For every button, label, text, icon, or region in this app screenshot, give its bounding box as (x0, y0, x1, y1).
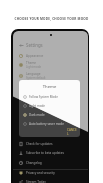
staticText: Stream Today (26, 180, 46, 183)
button[interactable]: Navigate up (18, 41, 62, 49)
button[interactable]: Follow System Mode (19, 93, 80, 101)
staticText: CHOOSE YOUR MODE, CHOOSE YOUR MOOD (0, 17, 103, 21)
staticText: Theme (26, 61, 37, 65)
staticText: Theme (19, 84, 80, 90)
staticText: Subscribe to beta updates (26, 151, 64, 155)
button[interactable]: Dark mode (19, 111, 80, 119)
staticText: Check for updates (26, 142, 53, 146)
staticText: Auto battery saver mode (29, 122, 64, 126)
staticText: System default (26, 76, 46, 80)
button[interactable]: Subscribe to beta updates (13, 148, 88, 157)
button[interactable]: Privacy and security (13, 168, 88, 177)
button[interactable]: CANCEL (67, 128, 77, 135)
button[interactable]: Changelog (13, 158, 88, 167)
staticText: Language (26, 72, 41, 76)
button[interactable]: Privacy and security (13, 168, 88, 177)
staticText: Theme (26, 61, 37, 65)
staticText: Follow System Mode (29, 95, 58, 99)
button[interactable]: Navigate up (18, 41, 62, 49)
staticText: Settings (26, 42, 43, 48)
button[interactable]: Check for updates (13, 139, 88, 148)
staticText: System default (26, 76, 46, 80)
button[interactable]: Auto battery saver mode (19, 120, 80, 128)
staticText: Check for updates (26, 142, 53, 146)
button[interactable]: Appearance (13, 51, 88, 60)
staticText: Stream Today (26, 180, 46, 183)
button[interactable]: Theme (13, 59, 88, 70)
staticText: Auto battery saver mode (29, 122, 64, 126)
staticText: Light mode (26, 65, 41, 69)
staticText: Language (26, 72, 41, 76)
staticText: Dark mode (29, 113, 45, 117)
staticText: Changelog (26, 161, 42, 165)
staticText: CANCEL (67, 128, 77, 135)
button[interactable]: Subscribe to beta updates (13, 148, 88, 157)
button[interactable]: Theme (13, 59, 88, 70)
button[interactable]: Changelog (13, 158, 88, 167)
staticText: CANCEL (67, 128, 77, 135)
button[interactable]: Light mode (19, 102, 80, 110)
button[interactable]: Check for updates (13, 139, 88, 148)
staticText: Light mode (29, 104, 46, 108)
staticText: Dark mode (29, 113, 45, 117)
button[interactable]: Navigate up (18, 42, 24, 48)
staticText: Privacy and security (26, 171, 55, 175)
button[interactable]: Language (13, 70, 88, 81)
staticText: Follow System Mode (29, 95, 58, 99)
staticText: Changelog (26, 161, 42, 165)
staticText: Appearance (26, 54, 44, 58)
button[interactable]: Follow System Mode (19, 93, 80, 101)
staticText: Appearance (26, 54, 44, 58)
button[interactable]: Dark mode (19, 111, 80, 119)
button[interactable]: Stream Today (13, 177, 88, 183)
button[interactable]: Auto battery saver mode (19, 120, 80, 128)
staticText: Subscribe to beta updates (26, 151, 64, 155)
staticText: Privacy and security (26, 171, 55, 175)
button[interactable]: Light mode (19, 102, 80, 110)
staticText: Light mode (29, 104, 46, 108)
staticText: Light mode (26, 65, 41, 69)
button[interactable]: Language (13, 70, 88, 81)
button[interactable]: Appearance (13, 51, 88, 60)
button[interactable]: Stream Today (13, 177, 88, 183)
staticText: Settings (26, 42, 43, 48)
button[interactable]: CANCEL (67, 128, 77, 135)
button[interactable]: Navigate up (18, 42, 24, 48)
staticText: Theme (19, 84, 80, 90)
